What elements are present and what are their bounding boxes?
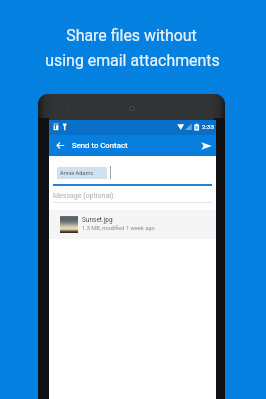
staticText: Message (optional) — [53, 192, 114, 200]
staticText: Send to Contact — [72, 141, 128, 150]
staticText: 2:33 — [202, 123, 214, 130]
button[interactable]: Send — [198, 138, 214, 154]
staticText: Annie Adams — [60, 170, 94, 177]
staticText: Sunset.jpg — [82, 216, 113, 224]
staticText: Share files without — [66, 26, 197, 45]
button[interactable]: Back — [53, 138, 68, 153]
staticText: using email attachments — [45, 51, 220, 70]
button[interactable] — [49, 210, 216, 239]
staticText: 1.3 MB, modified 1 week ago — [82, 225, 155, 232]
